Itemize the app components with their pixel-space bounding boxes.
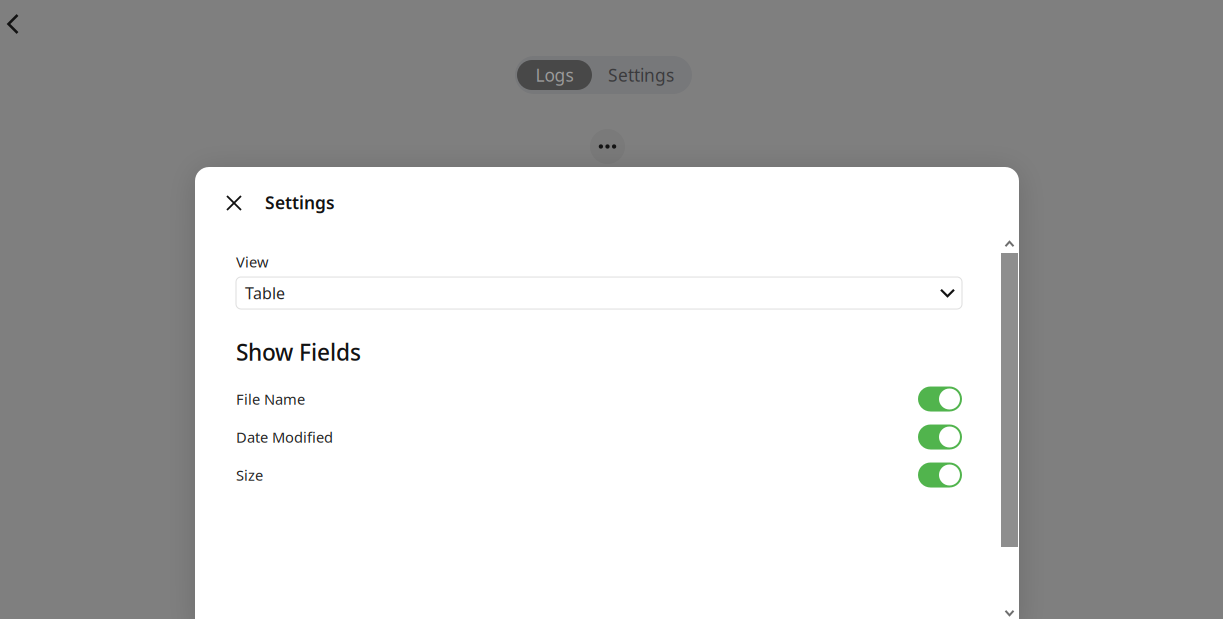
- staticText: Date Modified: [236, 427, 333, 447]
- button[interactable]: Size: [236, 456, 962, 494]
- staticText: Settings: [265, 191, 335, 214]
- button[interactable]: Back: [0, 7, 27, 41]
- button[interactable]: More options: [590, 129, 625, 164]
- button[interactable]: Date Modified: [236, 418, 962, 456]
- button[interactable]: File Name: [236, 380, 962, 418]
- staticText: Show Fields: [236, 337, 361, 367]
- staticText: Settings: [608, 63, 674, 86]
- staticText: Table: [245, 282, 285, 304]
- staticText: Logs: [535, 63, 573, 86]
- button[interactable]: Scroll up: [1001, 237, 1018, 251]
- staticText: Size: [236, 465, 263, 485]
- button[interactable]: Settings: [592, 60, 690, 89]
- button[interactable]: Logs: [517, 60, 592, 90]
- staticText: View: [236, 252, 269, 271]
- button[interactable]: Close: [219, 188, 249, 218]
- staticText: File Name: [236, 389, 305, 409]
- button[interactable]: Table: [236, 277, 962, 309]
- button[interactable]: Scroll down: [1001, 606, 1018, 619]
